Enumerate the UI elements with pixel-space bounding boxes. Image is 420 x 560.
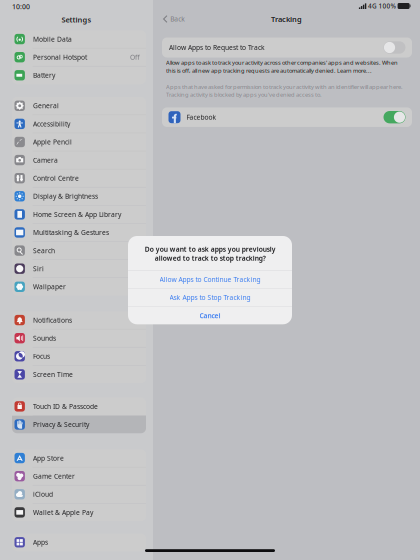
button[interactable]: General	[12, 97, 146, 115]
button[interactable]: Screen Time	[12, 366, 146, 383]
button[interactable]: Back	[159, 12, 188, 26]
button[interactable]: Wallpaper	[12, 278, 146, 296]
staticText: App Store	[33, 453, 64, 463]
staticText: Do you want to ask apps you previously a…	[144, 244, 275, 263]
button[interactable]: Search	[12, 242, 146, 259]
staticText: Touch ID & Passcode	[33, 402, 98, 411]
staticText: Allow apps to ask to track your activity…	[166, 59, 398, 74]
button[interactable]: iCloud	[12, 485, 146, 503]
button[interactable]: Camera	[12, 151, 146, 169]
staticText: Game Center	[33, 472, 75, 481]
button[interactable]: App Store	[12, 449, 146, 467]
staticText: Settings	[61, 14, 91, 25]
staticText: Privacy & Security	[33, 420, 89, 429]
staticText: Allow Apps to Request to Track	[169, 43, 265, 52]
button[interactable]: Allow Apps to Request to Track	[162, 37, 412, 57]
button[interactable]: Control Centre	[12, 169, 146, 187]
staticText: Off	[130, 53, 140, 62]
button[interactable]: Game Center	[12, 467, 146, 485]
button[interactable]: Multitasking & Gestures	[12, 224, 146, 241]
staticText: Home Screen & App Library	[33, 210, 121, 219]
staticText: Control Centre	[33, 174, 79, 183]
button[interactable]: Focus	[12, 347, 146, 365]
button[interactable]: Accessibility	[12, 115, 146, 133]
staticText: Sounds	[33, 334, 56, 343]
staticText: Back	[170, 14, 185, 24]
staticText: Apple Pencil	[33, 137, 72, 146]
staticText: Battery	[33, 71, 55, 80]
button[interactable]: Privacy & Security	[12, 416, 146, 433]
staticText: Camera	[33, 155, 58, 165]
staticText: Focus	[33, 352, 50, 361]
button[interactable]: Wallet & Apple Pay	[12, 504, 146, 521]
button[interactable]: Apps	[12, 533, 146, 551]
button[interactable]: Mobile Data	[12, 30, 146, 48]
button[interactable]: Ask Apps to Stop Tracking	[128, 289, 292, 306]
staticText: Personal Hotspot	[33, 53, 87, 62]
staticText: General	[33, 101, 59, 110]
staticText: Notifications	[33, 315, 72, 325]
staticText: Tracking	[271, 14, 302, 24]
button[interactable]: Allow Apps to Continue Tracking	[128, 271, 292, 288]
button[interactable]: Home Screen & App Library	[12, 206, 146, 223]
staticText: Facebook	[186, 113, 216, 122]
button[interactable]: Personal Hotspot	[12, 48, 146, 66]
staticText: Mobile Data	[33, 34, 72, 44]
button[interactable]: Siri	[12, 260, 146, 277]
staticText: 4G	[368, 2, 377, 10]
staticText: Accessibility	[33, 119, 70, 128]
button[interactable]: Notifications	[12, 311, 146, 329]
staticText: iCloud	[33, 490, 53, 499]
staticText: Multitasking & Gestures	[33, 228, 109, 237]
button[interactable]: Sounds	[12, 329, 146, 347]
staticText: Display & Brightness	[33, 192, 98, 201]
staticText: Apps that have asked for permission to t…	[166, 83, 403, 98]
staticText: 10:00	[12, 2, 30, 11]
staticText: Wallpaper	[33, 282, 66, 291]
button[interactable]: Battery	[12, 66, 146, 84]
staticText: 100%	[379, 2, 396, 10]
button[interactable]: Display & Brightness	[12, 187, 146, 205]
button[interactable]: Apple Pencil	[12, 133, 146, 151]
staticText: Siri	[33, 264, 44, 273]
staticText: Ask Apps to Stop Tracking	[169, 293, 250, 302]
button[interactable]: Facebook	[162, 107, 412, 127]
staticText: Cancel	[199, 311, 220, 320]
staticText: Screen Time	[33, 370, 73, 379]
staticText: Apps	[33, 538, 48, 547]
button[interactable]: Touch ID & Passcode	[12, 398, 146, 415]
button[interactable]: Cancel	[128, 307, 292, 324]
staticText: Allow Apps to Continue Tracking	[159, 275, 260, 284]
staticText: Search	[33, 246, 55, 255]
staticText: Wallet & Apple Pay	[33, 508, 93, 517]
